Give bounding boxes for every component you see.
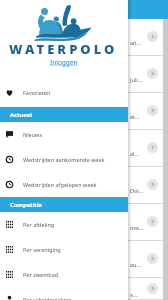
staticText: Wedstrijden afgelopen week <box>23 181 97 188</box>
button[interactable]: Wedstrijden aankomende week <box>0 147 128 172</box>
staticText: Per zwembad <box>23 271 59 278</box>
button[interactable]: x... <box>0 278 168 300</box>
other: Open <box>147 142 158 153</box>
other: Open <box>147 105 158 116</box>
button[interactable]: ove... <box>0 204 168 241</box>
button[interactable]: Dol... <box>0 167 168 204</box>
staticText: Per vereniging <box>23 246 61 253</box>
button[interactable]: Per zwembad <box>0 262 128 287</box>
button[interactable]: Per afdeling <box>0 212 128 237</box>
staticText: Dol... <box>130 187 144 194</box>
button[interactable]: et... <box>0 93 168 130</box>
staticText: au... <box>130 261 141 268</box>
staticText: Nieuws <box>23 131 43 138</box>
staticText: et... <box>130 113 140 120</box>
staticText: Favorieten <box>23 89 51 96</box>
button[interactable]: Nieuws <box>0 122 128 147</box>
button[interactable]: Per scheidsrechter <box>0 287 128 300</box>
other: Open <box>147 179 158 190</box>
button[interactable]: an... <box>0 19 168 56</box>
other: Open <box>147 216 158 227</box>
staticText: x... <box>130 291 138 298</box>
staticText: Wedstrijden aankomende week <box>23 156 105 163</box>
other: Open <box>147 68 158 79</box>
staticText: Competitie <box>10 201 43 209</box>
button[interactable]: au... <box>0 241 168 278</box>
button[interactable]: Per vereniging <box>0 237 128 262</box>
other: Open <box>147 31 158 42</box>
button[interactable]: Inloggen <box>50 58 78 67</box>
button[interactable]: Favorieten <box>0 80 128 105</box>
other: Open <box>147 283 158 294</box>
staticText: Actueel <box>10 111 32 119</box>
staticText: al... <box>130 150 139 157</box>
button[interactable]: Wedstrijden afgelopen week <box>0 172 128 197</box>
other: Open <box>147 253 158 264</box>
button[interactable]: juli... <box>0 56 168 93</box>
staticText: WATERPOLO <box>9 40 118 58</box>
staticText: ove... <box>130 224 144 231</box>
button[interactable]: al... <box>0 130 168 167</box>
staticText: Per afdeling <box>23 221 55 228</box>
staticText: juli... <box>130 76 143 83</box>
button[interactable]: Competitie <box>0 197 128 212</box>
staticText: an... <box>130 39 141 46</box>
staticText: Per scheidsrechter <box>23 296 72 300</box>
button[interactable]: Actueel <box>0 107 128 122</box>
